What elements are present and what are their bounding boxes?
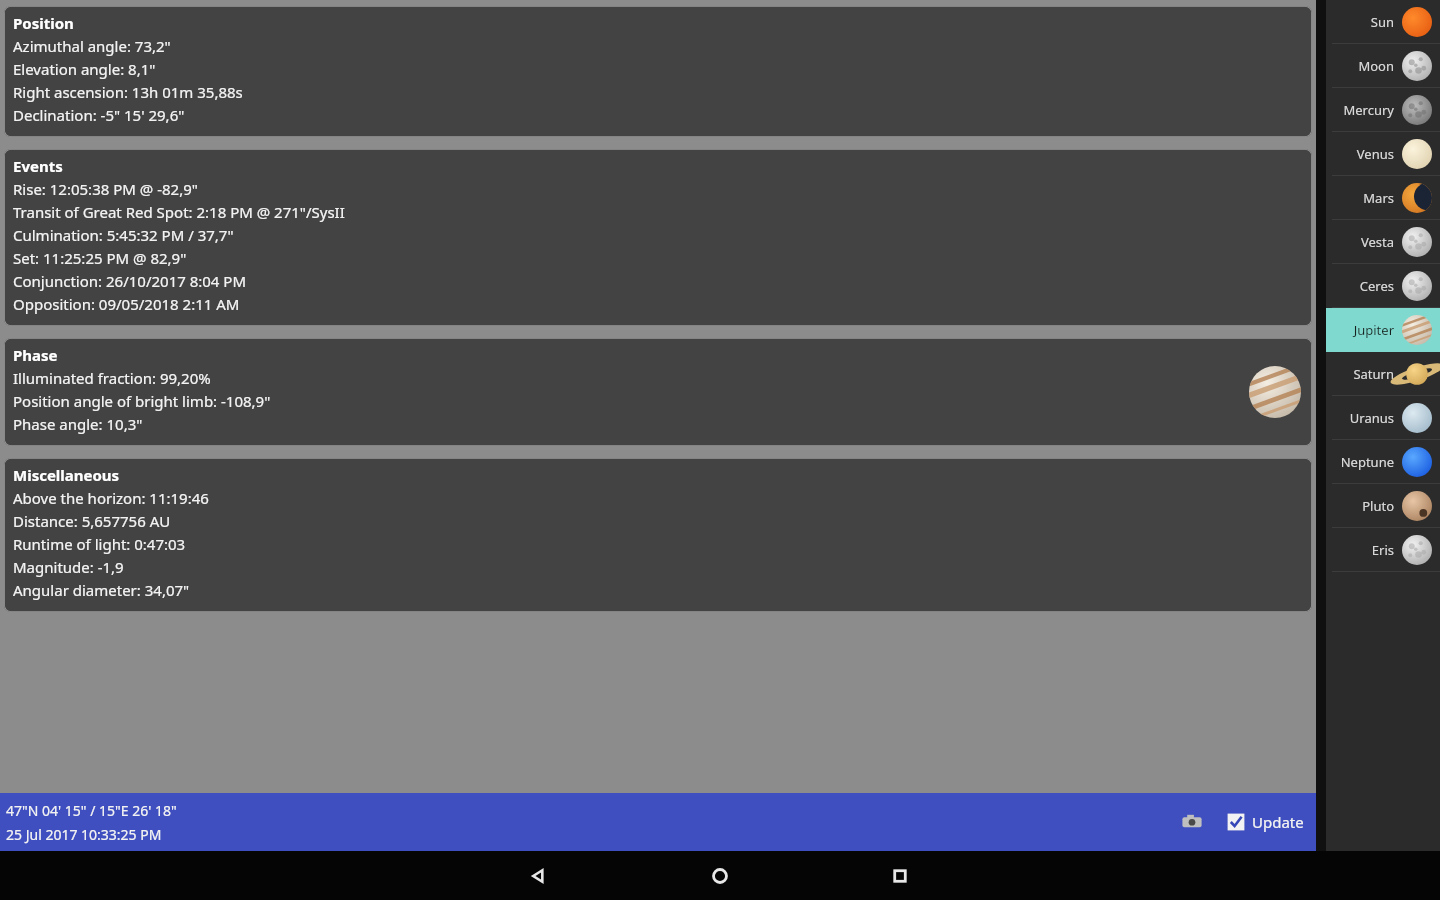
staticText: Mars xyxy=(1363,189,1394,207)
button[interactable]: Jupiter xyxy=(1326,308,1440,352)
staticText: Declination: -5" 15' 29,6" xyxy=(13,105,185,125)
staticText: Opposition: 09/05/2018 2:11 AM xyxy=(13,294,240,314)
staticText: Miscellaneous xyxy=(13,465,120,485)
staticText: Sun xyxy=(1370,13,1394,31)
button[interactable]: Sun xyxy=(1326,0,1440,44)
staticText: Position xyxy=(13,13,74,33)
staticText: Events xyxy=(13,156,63,176)
button[interactable]: Miscellaneous xyxy=(4,458,1312,612)
button[interactable]: Venus xyxy=(1326,132,1440,176)
staticText: Set: 11:25:25 PM @ 82,9" xyxy=(13,248,187,268)
staticText: Elevation angle: 8,1" xyxy=(13,59,156,79)
staticText: Neptune xyxy=(1340,453,1394,471)
staticText: Illuminated fraction: 99,20% xyxy=(13,368,211,388)
button[interactable]: Phase xyxy=(4,338,1312,446)
staticText: Conjunction: 26/10/2017 8:04 PM xyxy=(13,271,247,291)
staticText: Phase angle: 10,3" xyxy=(13,414,143,434)
staticText: Culmination: 5:45:32 PM / 37,7" xyxy=(13,225,234,245)
staticText: Azimuthal angle: 73,2" xyxy=(13,36,171,56)
button[interactable]: Uranus xyxy=(1326,396,1440,440)
button[interactable]: Events xyxy=(4,149,1312,326)
button[interactable]: Screenshot xyxy=(1174,804,1210,840)
staticText: Uranus xyxy=(1349,409,1394,427)
staticText: Runtime of light: 0:47:03 xyxy=(13,534,186,554)
button[interactable]: Eris xyxy=(1326,528,1440,572)
staticText: Above the horizon: 11:19:46 xyxy=(13,488,209,508)
staticText: Angular diameter: 34,07" xyxy=(13,580,190,600)
staticText: Rise: 12:05:38 PM @ -82,9" xyxy=(13,179,198,199)
staticText: 47"N 04' 15" / 15"E 26' 18" xyxy=(6,801,177,820)
button[interactable]: Mercury xyxy=(1326,88,1440,132)
staticText: Phase xyxy=(13,345,58,365)
staticText: Venus xyxy=(1356,145,1394,163)
staticText: Update xyxy=(1252,812,1304,832)
staticText: Mercury xyxy=(1343,101,1394,119)
staticText: Position angle of bright limb: -108,9" xyxy=(13,391,271,411)
staticText: Magnitude: -1,9 xyxy=(13,557,124,577)
button[interactable]: Back xyxy=(516,854,560,898)
button[interactable]: Home xyxy=(698,854,742,898)
staticText: Distance: 5,657756 AU xyxy=(13,511,171,531)
staticText: Pluto xyxy=(1362,497,1394,515)
button[interactable]: Saturn xyxy=(1326,352,1440,396)
button[interactable]: Neptune xyxy=(1326,440,1440,484)
button[interactable]: Position xyxy=(4,6,1312,137)
button[interactable]: Vesta xyxy=(1326,220,1440,264)
staticText: Transit of Great Red Spot: 2:18 PM @ 271… xyxy=(13,202,345,222)
staticText: Right ascension: 13h 01m 35,88s xyxy=(13,82,243,102)
staticText: 25 Jul 2017 10:33:25 PM xyxy=(6,825,162,844)
button[interactable]: Moon xyxy=(1326,44,1440,88)
staticText: Saturn xyxy=(1353,365,1394,383)
staticText: Vesta xyxy=(1360,233,1394,251)
button[interactable]: Pluto xyxy=(1326,484,1440,528)
staticText: Ceres xyxy=(1359,277,1394,295)
staticText: Eris xyxy=(1371,541,1394,559)
button[interactable]: Update xyxy=(1224,808,1306,836)
staticText: Moon xyxy=(1358,57,1394,75)
button[interactable]: Mars xyxy=(1326,176,1440,220)
button[interactable]: Recents xyxy=(878,854,922,898)
staticText: Jupiter xyxy=(1353,321,1394,339)
button[interactable]: Ceres xyxy=(1326,264,1440,308)
